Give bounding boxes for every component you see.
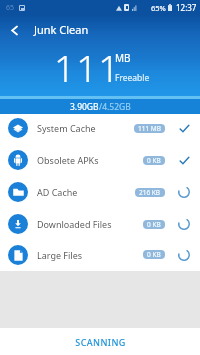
staticText: System Cache [37,122,96,134]
staticText: /4.52GB [99,101,131,113]
staticText: 216 KB [139,188,161,197]
button[interactable]: Obsolete APKs [0,144,200,176]
staticText: 65 [6,3,15,13]
button[interactable]: Downloaded Files [0,208,200,240]
staticText: Downloaded Files [37,218,112,230]
button[interactable]: Back [4,20,25,41]
button[interactable]: SCANNING [0,328,200,355]
button[interactable]: AD Cache [0,176,200,208]
button[interactable]: System Cache [0,112,200,144]
staticText: Obsolete APKs [37,154,99,166]
staticText: 0 KB [147,220,161,229]
staticText: 111 MB [138,124,161,133]
staticText: 12:37 [176,2,197,13]
staticText: 65% [151,3,166,13]
staticText: Freeable [115,72,150,84]
staticText: 0 KB [147,250,161,259]
staticText: Large Files [37,249,83,261]
staticText: 111 [54,42,121,92]
staticText: AD Cache [37,186,78,198]
staticText: 3.90GB [70,101,99,113]
staticText: MB [115,51,131,65]
button[interactable]: Large Files [0,240,200,269]
staticText: Junk Clean [34,22,89,37]
staticText: 0 KB [147,156,161,165]
staticText: SCANNING [75,336,126,348]
